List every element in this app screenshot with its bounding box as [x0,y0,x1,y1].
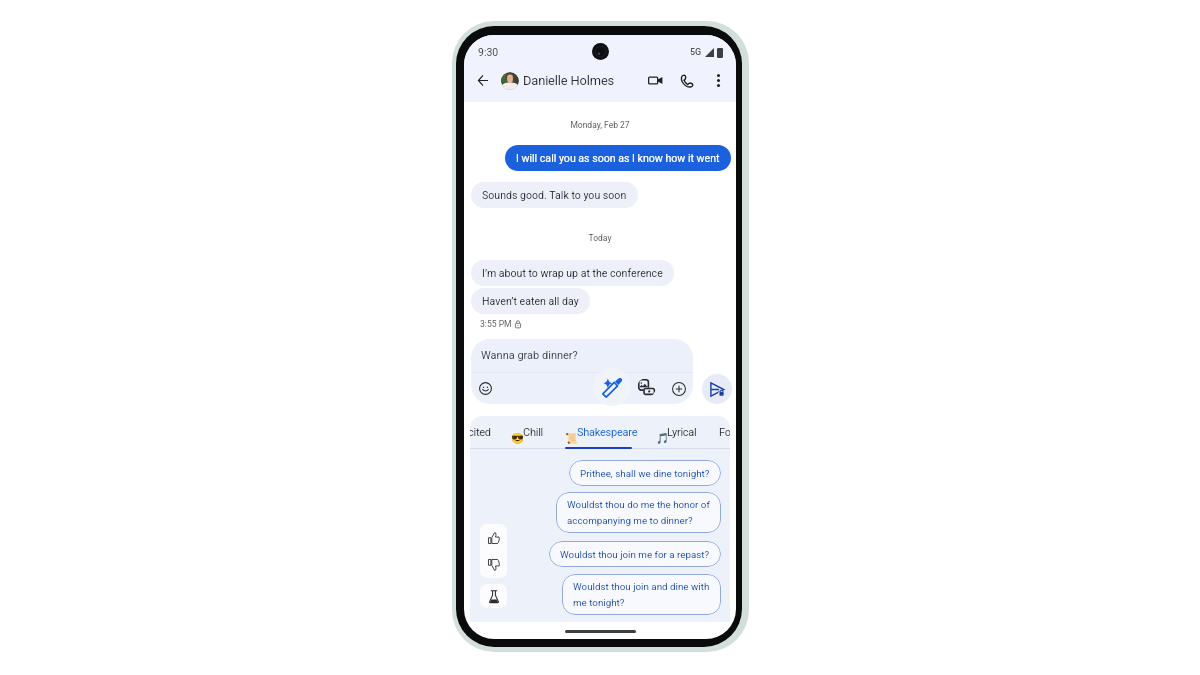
staticText: Prithee, shall we dine tonight? [580,468,710,479]
staticText: Haven’t eaten all day [482,295,579,307]
button[interactable]: I will call you as soon as I know how it… [505,145,731,171]
staticText: Wanna grab dinner? [481,349,578,362]
button[interactable]: Excited [470,426,491,439]
button[interactable]: Back [472,69,494,91]
button[interactable]: Feedback lab [480,584,507,608]
staticText: 📜 [565,432,579,444]
staticText: I’m about to wrap up at the conference [482,267,663,279]
staticText: Wouldst thou join and dine with me tonig… [573,581,710,608]
button[interactable]: Thumbs down [480,551,507,578]
button[interactable]: I’m about to wrap up at the conference [471,260,674,286]
staticText: Sounds good. Talk to you soon [482,189,627,201]
button[interactable]: Wouldst thou join and dine with me tonig… [562,574,721,615]
staticText: 9:30 [478,46,499,58]
staticText: Wouldst thou join me for a repast? [560,549,710,560]
button[interactable]: Chill [523,426,543,439]
button[interactable]: Prithee, shall we dine tonight? [569,460,721,486]
staticText: 5G [690,47,702,58]
button[interactable]: Sounds good. Talk to you soon [471,182,638,208]
button[interactable]: Wouldst thou join me for a repast? [549,541,721,567]
button[interactable]: Magic compose [593,368,631,406]
button[interactable]: Shakespeare [577,426,638,439]
button[interactable]: Gallery [637,378,656,397]
staticText: Danielle Holmes [523,73,615,88]
button[interactable]: Send [702,374,732,404]
staticText: Wouldst thou do me the honor of accompan… [567,499,710,526]
button[interactable]: Lyrical [667,426,697,439]
button[interactable]: Haven’t eaten all day [471,288,590,314]
button[interactable]: Video call [645,70,666,91]
staticText: 😎 [511,432,525,444]
staticText: Today [464,233,736,243]
button[interactable]: Add [669,379,688,398]
button[interactable]: Thumbs up [480,524,507,551]
button[interactable]: More options [708,70,729,91]
button[interactable]: Contact avatar [501,72,519,90]
button[interactable]: Emoji [476,379,495,398]
button[interactable]: Wouldst thou do me the honor of accompan… [556,492,721,533]
button[interactable]: Call [676,70,697,91]
staticText: 3:55 PM [480,319,512,329]
staticText: I will call you as soon as I know how it… [516,152,720,164]
button[interactable]: Formal [719,426,730,439]
staticText: Monday, Feb 27 [464,120,736,130]
staticText: 🎵 [656,432,670,444]
